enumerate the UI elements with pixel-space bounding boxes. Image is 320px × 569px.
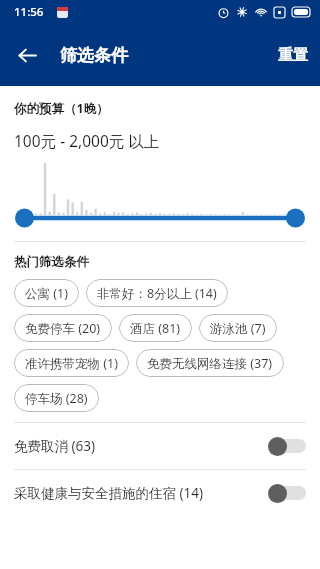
staticText: 公寓 (1) <box>25 285 68 302</box>
staticText: 非常好：8分以上 (14) <box>97 285 217 302</box>
button[interactable]: 免费取消 (63) <box>0 423 320 469</box>
staticText: 免费取消 (63) <box>14 437 268 455</box>
button[interactable]: 酒店 (81) <box>119 314 192 342</box>
staticText: 酒店 (81) <box>130 320 181 337</box>
button[interactable]: 公寓 (1) <box>14 279 79 307</box>
staticText: 停车场 (28) <box>25 390 88 407</box>
button[interactable]: 免费停车 (20) <box>14 314 112 342</box>
staticText: 免费停车 (20) <box>25 320 101 337</box>
button[interactable]: 停车场 (28) <box>14 384 99 412</box>
staticText: 100元 - 2,000元 以上 <box>14 130 160 151</box>
staticText: 准许携带宠物 (1) <box>25 355 118 372</box>
button[interactable]: 非常好：8分以上 (14) <box>86 279 228 307</box>
button[interactable]: 免费无线网络连接 (37) <box>136 349 284 377</box>
staticText: 游泳池 (7) <box>210 320 266 337</box>
button[interactable]: 重置 <box>266 40 320 71</box>
staticText: 采取健康与安全措施的住宿 (14) <box>14 484 268 502</box>
staticText: 你的预算（1晚） <box>14 100 109 117</box>
button[interactable]: 采取健康与安全措施的住宿 (14) <box>0 470 320 516</box>
staticText: 热门筛选条件 <box>14 254 89 270</box>
button[interactable]: Back <box>8 36 46 74</box>
staticText: 11:56 <box>14 4 44 20</box>
staticText: 重置 <box>278 46 308 65</box>
button[interactable]: 准许携带宠物 (1) <box>14 349 129 377</box>
staticText: 免费无线网络连接 (37) <box>147 355 273 372</box>
button[interactable]: 游泳池 (7) <box>199 314 277 342</box>
staticText: 筛选条件 <box>60 45 128 66</box>
